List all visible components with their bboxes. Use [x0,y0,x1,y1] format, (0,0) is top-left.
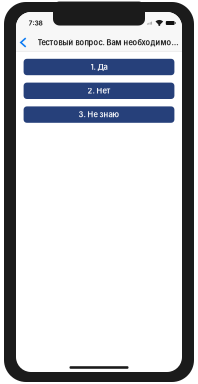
button[interactable]: 1. Да [24,59,174,75]
button[interactable]: Back [18,32,28,52]
button[interactable]: 2. Нет [24,83,174,99]
staticText: 3. Не знаю [78,110,119,119]
staticText: 2. Нет [87,86,110,95]
button[interactable]: 3. Не знаю [24,106,174,123]
staticText: 1. Да [90,62,107,72]
staticText: 7:38 [28,19,42,27]
staticText: Тестовый вопрос. Вам необходимо… [37,38,178,47]
